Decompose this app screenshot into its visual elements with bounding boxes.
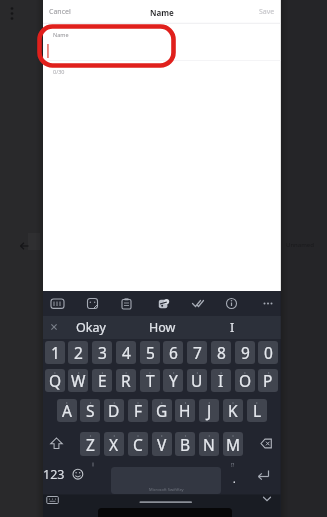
button[interactable]: . <box>204 470 264 488</box>
button[interactable]: X <box>104 432 124 456</box>
button[interactable]: 3 <box>92 341 112 364</box>
staticText: E <box>98 370 107 391</box>
button[interactable]: 5 <box>140 341 160 364</box>
staticText: Microsoft SwiftKey <box>149 487 184 492</box>
button[interactable]: Z <box>80 432 100 456</box>
button[interactable]: 9 <box>235 341 255 364</box>
staticText: S <box>86 400 95 421</box>
staticText: C <box>133 434 143 455</box>
button[interactable]: J <box>199 399 219 422</box>
staticText: 1 <box>51 342 60 363</box>
staticText: Y <box>169 370 178 391</box>
staticText: 6 <box>169 342 178 363</box>
staticText: H <box>179 400 191 421</box>
button[interactable]: R <box>116 369 136 392</box>
staticText: B <box>180 434 191 455</box>
button[interactable]: I <box>202 318 262 336</box>
staticText: 123 <box>43 466 65 483</box>
staticText: X <box>109 434 119 455</box>
button[interactable]: A <box>57 399 77 422</box>
button[interactable]: How <box>132 318 192 336</box>
staticText: P <box>263 370 273 391</box>
staticText: 5 <box>146 342 155 363</box>
staticText: D <box>108 400 120 421</box>
button[interactable]: L <box>247 399 267 422</box>
staticText: J <box>207 400 212 421</box>
button[interactable]: Microsoft SwiftKey <box>111 467 221 494</box>
button[interactable]: W <box>68 369 88 392</box>
button[interactable]: M <box>223 432 243 456</box>
button[interactable]: F <box>128 399 148 422</box>
button[interactable]: 8 <box>211 341 231 364</box>
staticText: !? <box>231 462 235 468</box>
button[interactable]: Save <box>237 3 297 21</box>
staticText: A <box>62 400 72 421</box>
staticText: Q <box>49 370 62 391</box>
button[interactable]: Okay <box>61 318 121 336</box>
staticText: Name <box>53 31 69 38</box>
staticText: V <box>157 434 167 455</box>
button[interactable]: O <box>235 369 255 392</box>
button[interactable]: I <box>211 369 231 392</box>
staticText: Cancel <box>49 7 71 17</box>
staticText: Save <box>259 7 275 17</box>
staticText: 4 <box>122 342 131 363</box>
staticText: N <box>203 434 215 455</box>
button[interactable]: 4 <box>116 341 136 364</box>
staticText: L <box>253 400 262 421</box>
staticText: I <box>218 370 224 391</box>
staticText: I <box>230 319 235 336</box>
staticText: T <box>146 370 155 391</box>
button[interactable]: D <box>104 399 124 422</box>
button[interactable]: E <box>92 369 112 392</box>
staticText: F <box>134 400 143 421</box>
button[interactable]: Y <box>163 369 183 392</box>
button[interactable]: S <box>80 399 100 422</box>
button[interactable]: 7 <box>187 341 207 364</box>
staticText: M <box>226 434 241 455</box>
staticText: 7 <box>193 342 202 363</box>
button[interactable]: C <box>128 432 148 456</box>
button[interactable]: T <box>140 369 160 392</box>
button[interactable]: 0 <box>258 341 278 364</box>
button[interactable]: P <box>258 369 278 392</box>
button[interactable]: U <box>187 369 207 392</box>
button[interactable]: 2 <box>68 341 88 364</box>
staticText: U <box>191 370 203 391</box>
staticText: R <box>121 370 131 391</box>
button[interactable]: Cancel <box>30 3 90 21</box>
staticText: Z <box>86 434 95 455</box>
staticText: W <box>71 370 86 391</box>
staticText: 9 <box>241 342 250 363</box>
staticText: 2 <box>74 342 83 363</box>
staticText: . <box>233 472 236 486</box>
staticText: 0/30 <box>53 68 65 75</box>
staticText: Name <box>150 7 174 18</box>
button[interactable]: N <box>199 432 219 456</box>
button[interactable]: 1 <box>45 341 65 364</box>
button[interactable]: Q <box>45 369 65 392</box>
button[interactable]: 123 <box>24 465 84 483</box>
button[interactable]: H <box>175 399 195 422</box>
staticText: O <box>239 370 252 391</box>
staticText: 8 <box>217 342 226 363</box>
staticText: K <box>228 400 238 421</box>
staticText: 0 <box>264 342 273 363</box>
staticText: 3 <box>98 342 107 363</box>
button[interactable]: G <box>152 399 172 422</box>
button[interactable]: 6 <box>163 341 183 364</box>
button[interactable]: B <box>175 432 195 456</box>
button[interactable]: V <box>152 432 172 456</box>
staticText: G <box>156 400 168 421</box>
button[interactable]: K <box>223 399 243 422</box>
staticText: How <box>149 319 176 336</box>
staticText: Okay <box>76 319 106 336</box>
